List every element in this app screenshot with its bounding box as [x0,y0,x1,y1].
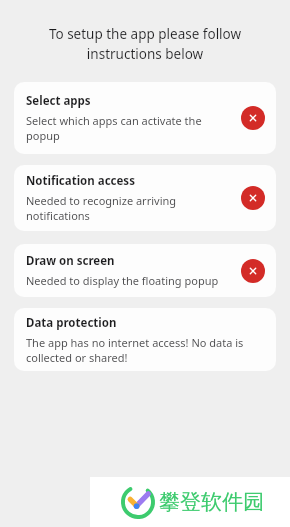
staticText: Select which apps can activate the popup [26,113,202,143]
staticText: Data protection [26,315,117,331]
button[interactable]: Data protection [14,308,276,371]
button[interactable]: Select apps [14,82,276,154]
staticText: Notification access [26,173,135,189]
staticText: To setup the app please follow instructi… [16,25,274,63]
button[interactable]: Draw on screen [14,244,276,297]
staticText: Needed to recognize arriving notificatio… [26,193,177,223]
staticText: Select apps [26,93,91,109]
button[interactable]: Not granted, tap to fix [241,186,265,210]
staticText: The app has no internet access! No data … [26,335,244,365]
staticText: 攀登软件园 [159,489,264,515]
button[interactable]: Not granted, tap to fix [241,106,265,130]
button[interactable]: Not granted, tap to fix [241,259,265,283]
button[interactable]: Notification access [14,165,276,231]
staticText: Needed to display the floating popup [26,273,219,288]
staticText: Draw on screen [26,253,115,269]
